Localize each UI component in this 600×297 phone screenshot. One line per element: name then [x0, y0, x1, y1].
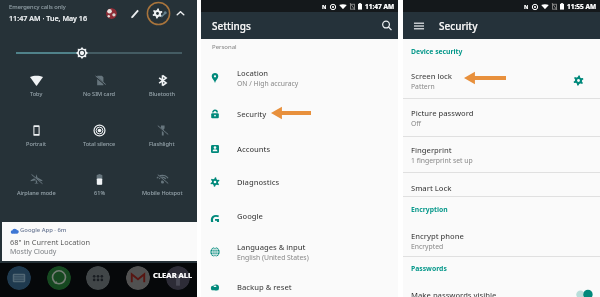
button[interactable]: Picture password — [403, 103, 600, 131]
staticText: Personal — [212, 43, 237, 51]
button[interactable]: App 3 — [86, 266, 110, 290]
staticText: CLEAR ALL — [153, 270, 193, 280]
staticText: Google — [237, 211, 263, 221]
staticText: Screen lock — [411, 71, 453, 81]
button[interactable]: Portrait — [5, 125, 67, 157]
staticText: Location — [237, 68, 269, 78]
button[interactable]: Screen lock settings — [573, 75, 584, 86]
button[interactable]: Device security — [411, 47, 463, 56]
staticText: 68" in Current Location — [10, 237, 90, 247]
staticText: Airplane mode — [17, 189, 56, 197]
button[interactable]: No SIM card — [68, 75, 130, 107]
staticText: Languages & input — [237, 242, 306, 252]
button[interactable]: Toby — [5, 75, 67, 107]
staticText: Mostly Cloudy — [10, 247, 57, 257]
staticText: Pattern — [411, 82, 435, 91]
staticText: Picture password — [411, 108, 474, 118]
staticText: Portrait — [26, 140, 46, 148]
staticText: N — [524, 3, 529, 10]
button[interactable]: Languages & input — [201, 235, 398, 269]
staticText: Fingerprint — [411, 145, 452, 155]
button[interactable]: Edit — [129, 8, 141, 20]
staticText: N — [322, 3, 327, 10]
button[interactable]: Google App · 6m — [2, 222, 197, 261]
button[interactable]: Total silence — [68, 125, 130, 157]
staticText: English (United States) — [237, 253, 309, 262]
button[interactable]: Navigation menu — [412, 19, 426, 33]
button[interactable]: Flashlight — [131, 125, 193, 157]
staticText: G — [210, 210, 221, 222]
staticText: Security — [439, 19, 478, 33]
staticText: 61% — [94, 189, 106, 197]
button[interactable]: Encryption — [411, 205, 448, 214]
button[interactable]: App 4 — [126, 266, 150, 290]
button[interactable]: Fingerprint — [403, 140, 600, 168]
staticText: Accounts — [237, 144, 271, 154]
staticText: Encryption — [411, 205, 448, 214]
staticText: 11:47 AM · Tue, May 16 — [9, 13, 88, 23]
button[interactable]: Location — [201, 61, 398, 95]
staticText: Backup & reset — [237, 282, 292, 292]
button[interactable]: Account — [106, 8, 117, 19]
button[interactable]: Collapse — [175, 8, 186, 19]
button[interactable]: Airplane mode — [5, 174, 67, 206]
staticText: No SIM card — [83, 90, 116, 98]
staticText: 11:55 AM — [567, 2, 597, 11]
button[interactable]: App 2 — [47, 266, 71, 290]
button[interactable]: App 5 — [166, 266, 190, 290]
staticText: Encrypt phone — [411, 231, 464, 241]
button[interactable]: Accounts — [201, 132, 398, 166]
staticText: Settings — [212, 19, 251, 33]
staticText: Total silence — [83, 140, 116, 148]
button[interactable]: Settings — [146, 1, 171, 26]
staticText: ON / High accuracy — [237, 79, 299, 88]
button[interactable]: Backup & reset — [201, 270, 398, 297]
button[interactable]: Encrypt phone — [403, 226, 600, 254]
button[interactable]: Diagnostics — [201, 165, 398, 199]
staticText: Make passwords visible — [411, 290, 497, 297]
button[interactable]: G — [201, 199, 398, 233]
button[interactable]: Make passwords visible — [403, 285, 600, 297]
staticText: Passwords — [411, 264, 447, 273]
button[interactable]: 61% — [68, 174, 130, 206]
staticText: Google App · 6m — [20, 226, 67, 234]
staticText: Flashlight — [149, 140, 175, 148]
button[interactable]: Security — [201, 97, 398, 131]
staticText: Diagnostics — [237, 177, 280, 187]
staticText: Off — [411, 119, 421, 128]
staticText: Emergency calls only — [9, 3, 66, 11]
staticText: Bluetooth — [149, 90, 175, 98]
button[interactable]: Search — [379, 18, 395, 34]
button[interactable]: Passwords — [411, 264, 447, 273]
staticText: Encrypted — [411, 242, 444, 251]
staticText: Smart Lock — [411, 183, 452, 193]
staticText: 1 fingerprint set up — [411, 156, 473, 165]
staticText: 11:47 AM — [365, 2, 395, 11]
button[interactable]: Smart Lock — [403, 173, 600, 201]
staticText: Toby — [30, 90, 43, 98]
button[interactable]: App 1 — [7, 266, 31, 290]
staticText: Security — [237, 109, 267, 119]
button[interactable]: Bluetooth — [131, 75, 193, 107]
staticText: Mobile Hotspot — [142, 189, 183, 197]
staticText: Device security — [411, 47, 463, 56]
button[interactable]: Screen lock — [403, 66, 600, 94]
button[interactable]: Mobile Hotspot — [131, 174, 193, 206]
